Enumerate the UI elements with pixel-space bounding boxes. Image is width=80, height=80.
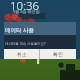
staticText: 취소 [17,51,27,57]
button[interactable]: 확인 [40,49,76,59]
staticText: 데이터를 계속 사용할까요? [5,41,46,46]
staticText: 9월 3일 화요일 [13,9,40,14]
staticText: 10:36 [10,0,40,14]
staticText: 데이터 사용 [5,26,34,34]
button[interactable]: 취소 [4,49,39,59]
staticText: 확인 [53,51,63,57]
